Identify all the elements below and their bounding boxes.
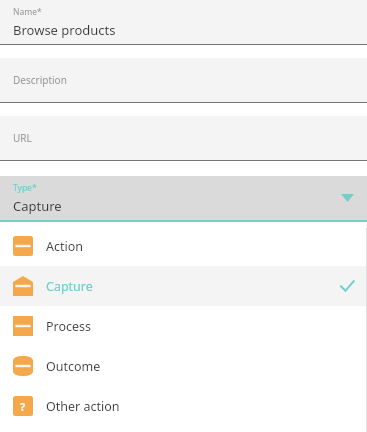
button[interactable]: Name* [0,0,367,44]
staticText: Capture [46,278,93,295]
button[interactable]: URL [0,116,367,160]
staticText: Outcome [46,358,101,375]
staticText: Type* [13,182,37,194]
button[interactable]: Capture [0,266,367,306]
staticText: Description [13,73,67,87]
staticText: Capture [13,197,62,215]
button[interactable]: Description [0,58,367,102]
staticText: ? [20,399,26,414]
staticText: Name* [13,6,42,18]
staticText: URL [13,131,32,145]
button[interactable]: ? [0,386,367,426]
button[interactable]: Outcome [0,346,367,386]
button[interactable]: Action [0,226,367,266]
staticText: Action [46,238,84,255]
button[interactable]: Process [0,306,367,346]
staticText: Other action [46,398,120,415]
staticText: Browse products [13,21,116,39]
staticText: Process [46,318,92,335]
button[interactable]: Collapse type dropdown [338,189,356,207]
button[interactable]: Type* [0,176,367,220]
